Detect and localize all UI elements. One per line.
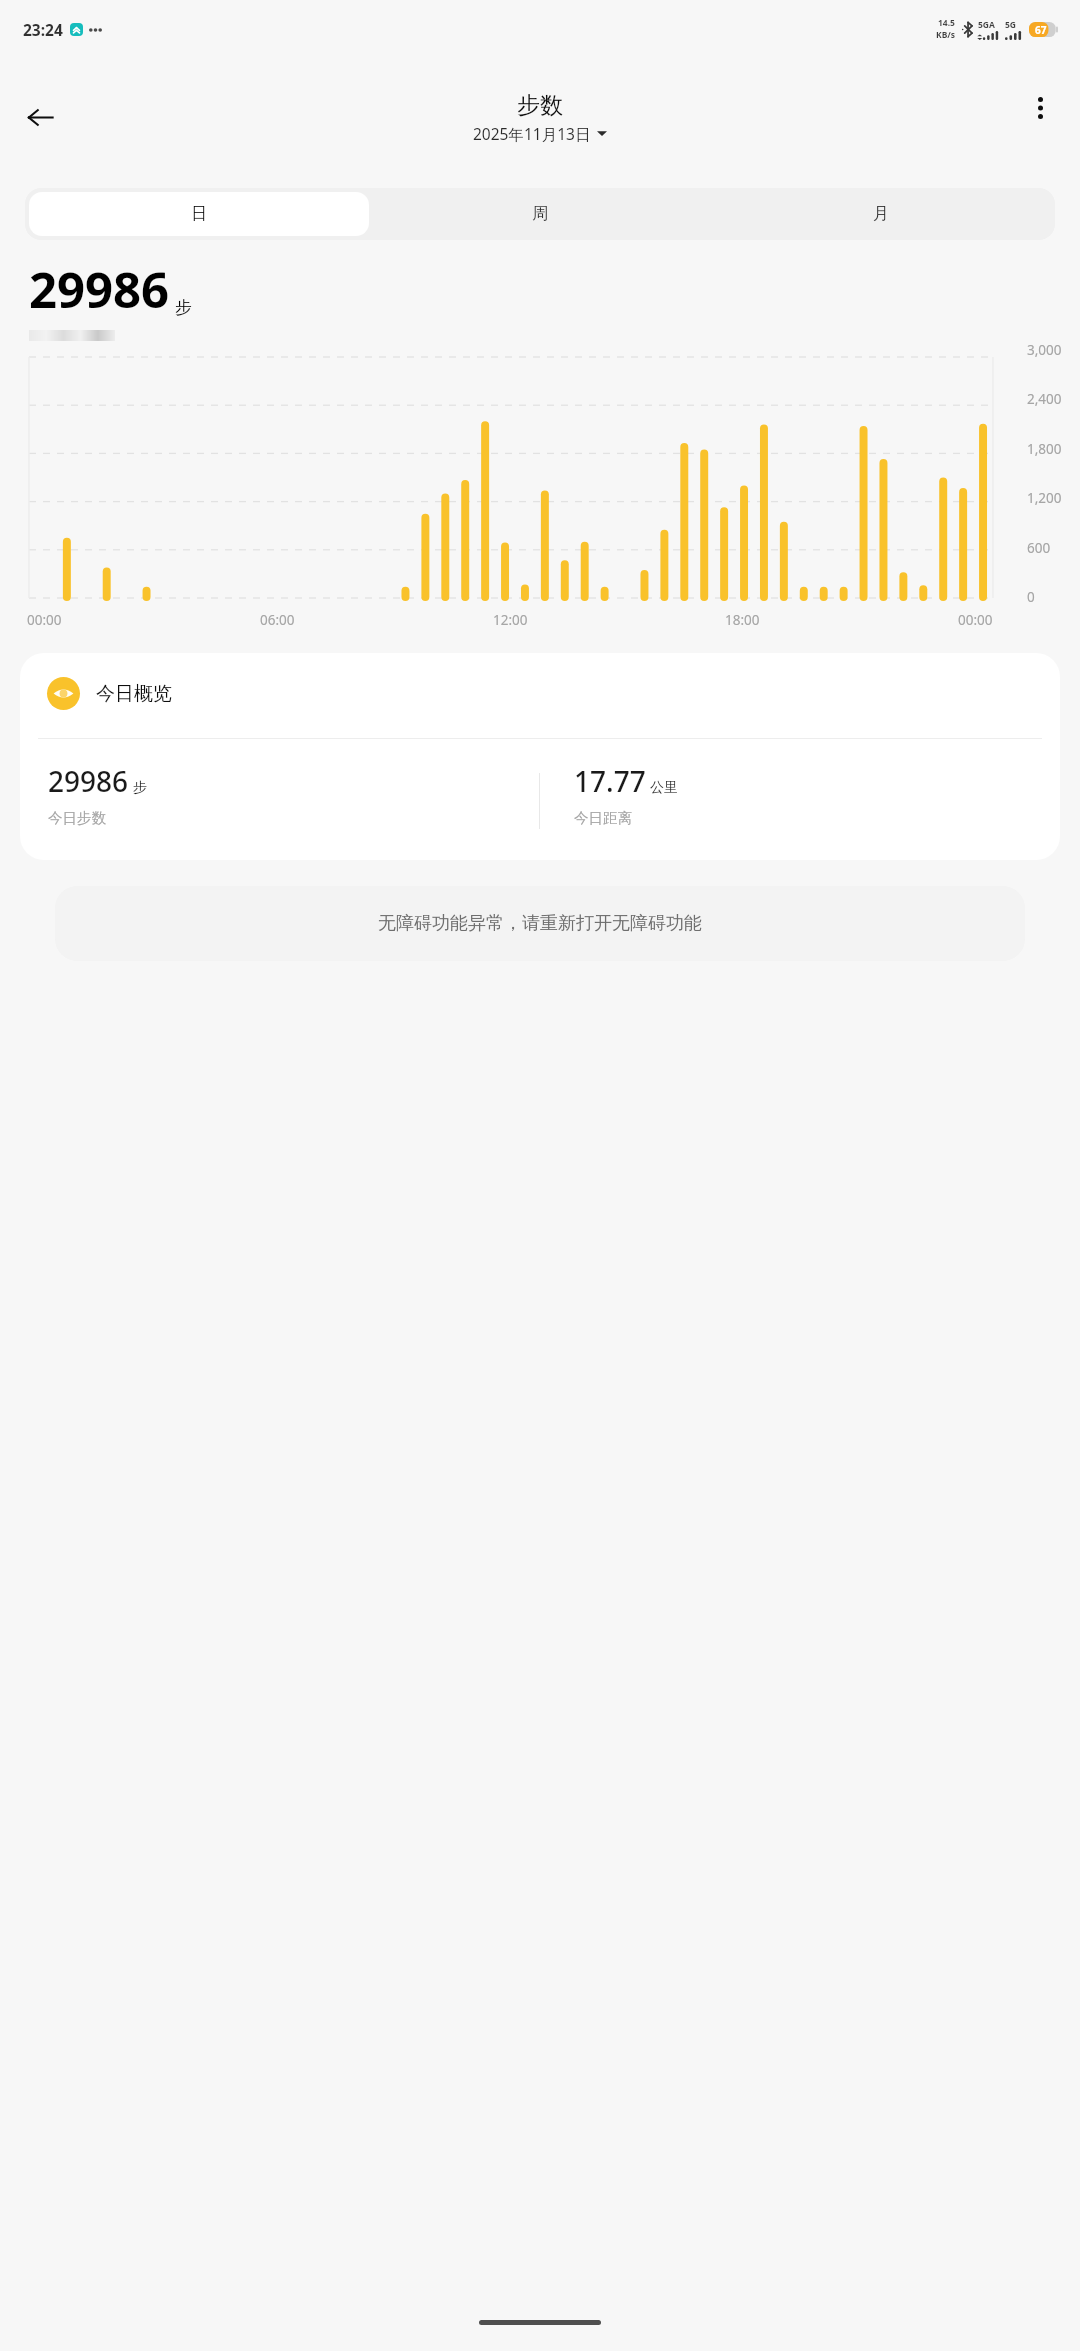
staticText: 600 xyxy=(1027,539,1051,557)
staticText: 18:00 xyxy=(725,611,760,629)
staticText: 14.5 xyxy=(938,17,955,29)
staticText: 17.77 xyxy=(574,762,646,800)
staticText: KB/s xyxy=(936,29,956,41)
staticText: 周 xyxy=(532,204,548,224)
staticText: 今日概览 xyxy=(96,682,172,706)
staticText: 06:00 xyxy=(260,611,295,629)
staticText: 0 xyxy=(1027,588,1035,606)
staticText: 1,200 xyxy=(1027,489,1062,507)
staticText: 步 xyxy=(175,297,192,318)
button[interactable]: 今日概览 xyxy=(20,653,1060,860)
staticText: 月 xyxy=(873,204,889,224)
staticText: 29986 xyxy=(48,762,129,800)
staticText: 00:00 xyxy=(27,611,62,629)
staticText: 29986 xyxy=(29,256,170,323)
button[interactable]: 月 xyxy=(710,192,1051,236)
staticText: 2025年11月13日 xyxy=(473,123,591,144)
button[interactable]: 周 xyxy=(369,192,710,236)
staticText: 步数 xyxy=(517,91,563,120)
staticText: 5G xyxy=(1005,19,1017,31)
staticText: 今日距离 xyxy=(574,809,632,827)
staticText: 日 xyxy=(191,204,207,224)
button[interactable]: 2025年11月13日 xyxy=(473,123,607,144)
staticText: 今日步数 xyxy=(48,809,106,827)
button[interactable]: 日 xyxy=(29,192,369,236)
staticText: 公里 xyxy=(650,779,678,797)
button[interactable]: Back xyxy=(17,94,63,140)
staticText: 00:00 xyxy=(958,611,993,629)
staticText: 步 xyxy=(133,779,147,797)
staticText: 2,400 xyxy=(1027,390,1062,408)
staticText: 3,000 xyxy=(1027,341,1062,359)
staticText: 23:24 xyxy=(23,19,63,40)
staticText: 12:00 xyxy=(493,611,528,629)
staticText: 1,800 xyxy=(1027,440,1062,458)
button[interactable]: More options xyxy=(1017,85,1063,131)
staticText: 无障碍功能异常，请重新打开无障碍功能 xyxy=(378,912,702,935)
staticText: 67 xyxy=(1035,23,1047,37)
staticText: 5GA xyxy=(978,19,995,31)
